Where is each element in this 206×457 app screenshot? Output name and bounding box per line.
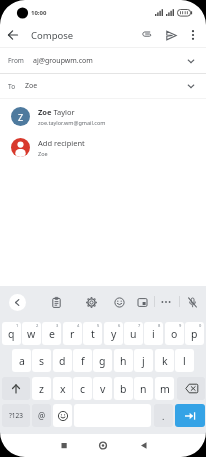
button[interactable]: i [144, 322, 163, 345]
staticText: u [130, 327, 137, 341]
button[interactable]: To [0, 74, 206, 99]
button[interactable] [2, 377, 30, 400]
staticText: a [19, 354, 25, 368]
staticText: s [39, 354, 45, 368]
staticText: o [171, 327, 178, 341]
staticText: k [162, 354, 168, 368]
button[interactable]: q [2, 322, 21, 345]
staticText: Zoe [25, 81, 38, 91]
button[interactable] [133, 293, 151, 311]
button[interactable]: @ [32, 404, 51, 427]
button[interactable]: r [63, 322, 82, 345]
button[interactable]: x [53, 377, 72, 400]
button[interactable] [82, 293, 100, 311]
button[interactable]: ?123 [2, 404, 30, 427]
staticText: @ [38, 410, 46, 421]
button[interactable]: l [175, 349, 194, 372]
staticText: q [8, 327, 15, 341]
staticText: 9 [179, 323, 182, 328]
staticText: aj@groupwm.com [33, 56, 93, 66]
staticText: 5 [97, 323, 100, 328]
button[interactable]: j [134, 349, 153, 372]
button[interactable]: z [32, 377, 51, 400]
staticText: 8 [158, 323, 161, 328]
button[interactable]: g [93, 349, 112, 372]
staticText: y [111, 327, 117, 341]
staticText: j [142, 354, 145, 368]
staticText: Add recipient [38, 138, 85, 148]
button[interactable]: w [22, 322, 41, 345]
button[interactable]: e [42, 322, 61, 345]
button[interactable]: d [53, 349, 72, 372]
staticText: t [91, 327, 95, 341]
button[interactable]: n [134, 377, 153, 400]
staticText: h [120, 354, 127, 368]
button[interactable]: From [0, 48, 206, 74]
button[interactable]: p [185, 322, 204, 345]
staticText: p [191, 327, 198, 341]
button[interactable] [177, 377, 205, 400]
button[interactable]: s [32, 349, 51, 372]
staticText: ?123 [9, 411, 23, 420]
button[interactable]: b [114, 377, 133, 400]
staticText: 10:00 [31, 9, 47, 17]
staticText: l [183, 354, 186, 368]
button[interactable]: . [154, 404, 173, 427]
button[interactable] [0, 22, 26, 48]
button[interactable] [53, 404, 72, 427]
button[interactable]: m [155, 377, 174, 400]
button[interactable] [183, 293, 201, 311]
staticText: 4 [77, 323, 80, 328]
staticText: f [81, 354, 85, 368]
staticText: r [70, 327, 75, 341]
button[interactable] [137, 434, 206, 457]
staticText: i [152, 327, 155, 341]
staticText: 6 [118, 323, 121, 328]
staticText: d [59, 354, 66, 368]
button[interactable]: y [104, 322, 123, 345]
button[interactable]: f [73, 349, 92, 372]
button[interactable]: k [155, 349, 174, 372]
staticText: x [60, 382, 66, 396]
staticText: Zoe [38, 150, 48, 157]
staticText: Compose [31, 29, 74, 42]
button[interactable] [183, 25, 203, 45]
staticText: b [120, 382, 127, 396]
button[interactable] [9, 294, 26, 311]
button[interactable] [47, 293, 65, 311]
staticText: n [140, 382, 147, 396]
staticText: v [100, 382, 106, 396]
staticText: c [80, 382, 86, 396]
staticText: z [39, 382, 44, 396]
button[interactable] [110, 293, 128, 311]
button[interactable] [160, 24, 182, 46]
button[interactable]: a [12, 349, 31, 372]
button[interactable]: o [165, 322, 184, 345]
staticText: Zoe Taylor [38, 107, 75, 117]
button[interactable]: h [114, 349, 133, 372]
button[interactable] [0, 434, 68, 457]
button[interactable] [157, 293, 175, 311]
staticText: e [49, 327, 55, 341]
staticText: 0 [199, 323, 202, 328]
staticText: From [8, 56, 24, 65]
button[interactable] [175, 404, 205, 427]
button[interactable]: c [73, 377, 92, 400]
staticText: w [27, 327, 36, 341]
button[interactable]: v [93, 377, 112, 400]
staticText: zoe.taylor.wm@gmail.com [38, 119, 106, 126]
button[interactable]: u [124, 322, 143, 345]
staticText: To [8, 82, 16, 91]
button[interactable]: t [83, 322, 102, 345]
staticText: 7 [138, 323, 141, 328]
staticText: 3 [56, 323, 59, 328]
button[interactable]: Z [0, 101, 206, 132]
staticText: 2 [36, 323, 39, 328]
staticText: . [162, 410, 165, 422]
button[interactable]: Add recipient [0, 132, 206, 163]
button[interactable] [68, 434, 137, 457]
button[interactable] [136, 24, 158, 46]
staticText: Z [18, 111, 24, 123]
staticText: m [160, 382, 170, 396]
